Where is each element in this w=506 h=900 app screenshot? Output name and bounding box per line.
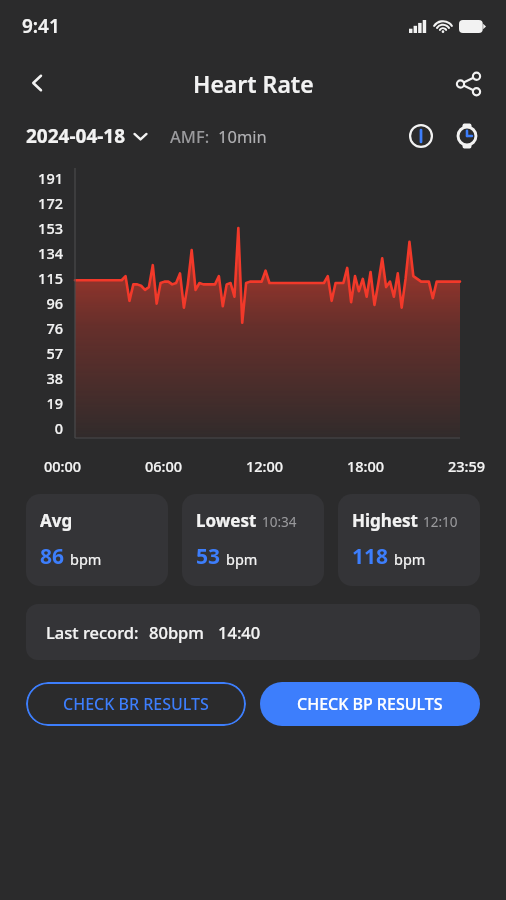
staticText: bpm	[226, 549, 258, 569]
staticText: 18:00	[347, 456, 385, 476]
staticText: 86	[40, 542, 65, 571]
staticText: 80bpm	[149, 621, 204, 643]
button[interactable]: CHECK BP RESULTS	[260, 682, 480, 726]
staticText: 0	[54, 418, 63, 438]
staticText: 115	[38, 268, 63, 288]
button[interactable]: Share	[442, 57, 494, 109]
button[interactable]: Watch	[446, 115, 488, 157]
button[interactable]: 2024-04-18	[26, 123, 267, 149]
staticText: 96	[46, 293, 63, 313]
button[interactable]: Back	[10, 56, 64, 110]
button[interactable]: Last record:	[26, 604, 480, 660]
staticText: 23:59	[448, 456, 486, 476]
button[interactable]: Lowest	[182, 494, 324, 586]
staticText: 53	[196, 542, 221, 571]
staticText: 118	[352, 542, 389, 571]
staticText: CHECK BP RESULTS	[297, 693, 443, 715]
staticText: 10min	[218, 125, 267, 147]
staticText: 19	[46, 393, 63, 413]
staticText: 191	[38, 168, 63, 188]
staticText: Lowest	[196, 509, 257, 532]
button[interactable]: CHECK BR RESULTS	[26, 682, 246, 726]
staticText: 172	[38, 193, 63, 213]
staticText: CHECK BR RESULTS	[63, 693, 209, 715]
staticText: 76	[46, 318, 63, 338]
staticText: 12:10	[423, 513, 458, 531]
staticText: Avg	[40, 509, 73, 532]
staticText: bpm	[394, 549, 426, 569]
staticText: 06:00	[145, 456, 183, 476]
staticText: 10:34	[262, 513, 297, 531]
button[interactable]: Highest	[338, 494, 480, 586]
staticText: bpm	[70, 549, 102, 569]
staticText: 14:40	[218, 621, 261, 643]
staticText: Heart Rate	[193, 68, 314, 99]
staticText: 57	[46, 343, 63, 363]
staticText: 38	[46, 368, 63, 388]
staticText: 153	[38, 218, 63, 238]
staticText: 134	[38, 243, 63, 263]
button[interactable]: Information	[400, 115, 442, 157]
staticText: Last record:	[46, 621, 139, 643]
staticText: 2024-04-18	[26, 123, 126, 149]
button[interactable]: Avg	[26, 494, 168, 586]
staticText: 00:00	[44, 456, 82, 476]
staticText: 12:00	[246, 456, 284, 476]
staticText: Highest	[352, 509, 418, 532]
staticText: AMF:	[170, 125, 210, 147]
staticText: 9:41	[22, 13, 60, 39]
